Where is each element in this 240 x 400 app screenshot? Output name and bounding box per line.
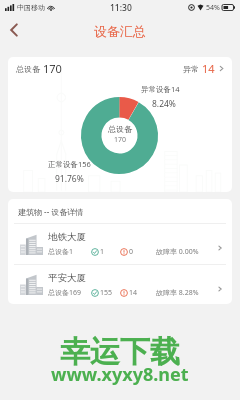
staticText: 正常设备156 bbox=[48, 159, 91, 169]
staticText: 总设备 bbox=[108, 124, 132, 134]
staticText: 总设备 bbox=[16, 63, 43, 74]
staticText: 故障率 0.00% bbox=[156, 247, 199, 257]
staticText: www.xyxy8.net bbox=[51, 362, 189, 387]
button[interactable]: 平安大厦 bbox=[8, 265, 232, 304]
staticText: 设备汇总 bbox=[94, 23, 146, 39]
staticText: 中国移动 bbox=[17, 3, 45, 12]
staticText: 170 bbox=[43, 61, 62, 76]
staticText: 8.24% bbox=[152, 98, 176, 110]
staticText: 14 bbox=[129, 288, 138, 298]
staticText: 故障率 8.28% bbox=[156, 288, 199, 298]
staticText: 异常设备14 bbox=[141, 84, 180, 94]
staticText: 155 bbox=[100, 288, 113, 298]
staticText: 14 bbox=[202, 61, 215, 76]
button[interactable]: 异常 bbox=[183, 61, 226, 76]
staticText: 0 bbox=[129, 247, 134, 257]
staticText: 总设备169 bbox=[48, 288, 82, 298]
button[interactable]: Back bbox=[4, 20, 24, 40]
staticText: 1 bbox=[100, 247, 105, 257]
staticText: 11:30 bbox=[110, 2, 132, 14]
staticText: 总设备1 bbox=[48, 247, 74, 257]
staticText: 170 bbox=[114, 135, 127, 145]
staticText: 异常 bbox=[183, 63, 202, 74]
button[interactable]: 地铁大厦 bbox=[8, 224, 232, 264]
staticText: 幸运下载 bbox=[60, 333, 180, 371]
staticText: 地铁大厦 bbox=[48, 231, 86, 243]
staticText: 91.76% bbox=[55, 173, 84, 185]
staticText: 平安大厦 bbox=[48, 272, 86, 284]
staticText: 54% bbox=[206, 3, 220, 13]
staticText: 建筑物 -- 设备详情 bbox=[18, 206, 84, 217]
